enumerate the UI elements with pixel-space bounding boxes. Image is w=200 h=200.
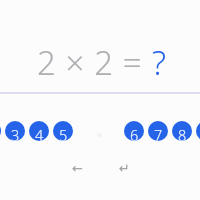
button[interactable]: Enter [112, 156, 136, 180]
staticText: 5 [59, 125, 68, 141]
button[interactable]: 3 [5, 121, 25, 141]
staticText: ? [152, 40, 167, 85]
button[interactable]: 2 [0, 121, 1, 141]
staticText: 2 × 2 = [37, 40, 152, 85]
button[interactable]: 6 [124, 121, 144, 141]
staticText: 8 [178, 125, 187, 141]
button[interactable]: 5 [53, 121, 73, 141]
button[interactable]: 9 [196, 121, 200, 141]
button[interactable]: Backspace [65, 156, 89, 180]
staticText: 6 [130, 125, 139, 141]
button[interactable]: 4 [29, 121, 49, 141]
staticText: 7 [154, 125, 163, 141]
staticText: 3 [11, 125, 20, 141]
staticText: 4 [35, 125, 44, 141]
button[interactable]: 7 [148, 121, 168, 141]
staticText: ↵ [119, 161, 130, 176]
staticText: ← [72, 161, 83, 176]
button[interactable]: 8 [172, 121, 192, 141]
